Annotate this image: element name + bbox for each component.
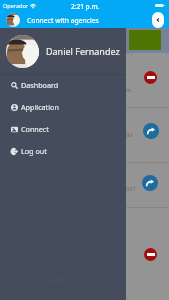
button[interactable]: Dashboard [0, 75, 126, 97]
button[interactable]: Remove [144, 248, 157, 261]
staticText: Daniel Fernandez [46, 45, 120, 57]
staticText: Operador [3, 2, 29, 9]
staticText: 0d [126, 131, 133, 138]
staticText: Connect [21, 124, 49, 134]
button[interactable]: Remove [144, 71, 157, 84]
button[interactable]: Forward [143, 123, 159, 139]
staticText: Connect with agencies [27, 16, 99, 25]
staticText: Dashboard [21, 80, 59, 90]
button[interactable]: Daniel Fernandez [0, 28, 126, 74]
staticText: 007 [126, 185, 136, 192]
staticText: m. [126, 86, 133, 93]
button[interactable]: Log out [0, 141, 126, 163]
staticText: Application [21, 102, 59, 112]
staticText: Log out [21, 146, 47, 156]
button[interactable]: Application [0, 97, 126, 119]
button[interactable]: Profile [6, 13, 20, 27]
button[interactable]: Collapse menu [152, 12, 164, 28]
staticText: 2:21 p.m. [71, 2, 100, 11]
button[interactable]: Forward [142, 175, 158, 191]
button[interactable]: Connect [0, 119, 126, 141]
